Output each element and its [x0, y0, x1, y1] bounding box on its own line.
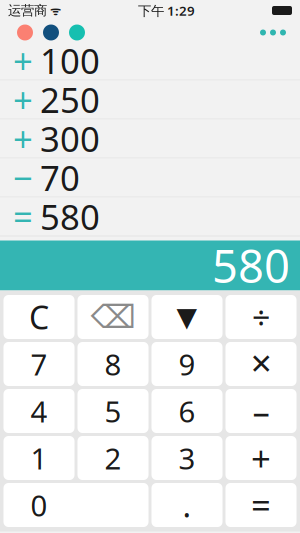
- button[interactable]: +: [0, 41, 300, 80]
- staticText: −: [13, 154, 33, 200]
- staticText: 0: [30, 485, 47, 524]
- staticText: 运营商: [8, 2, 47, 19]
- button[interactable]: 5: [77, 389, 148, 433]
- staticText: 4: [30, 391, 47, 430]
- button[interactable]: =: [225, 483, 296, 527]
- staticText: 2: [104, 438, 121, 477]
- button[interactable]: +: [0, 80, 300, 119]
- staticText: 下午 1:29: [138, 2, 195, 19]
- button[interactable]: Blue tag: [38, 20, 64, 44]
- staticText: 7: [30, 344, 47, 383]
- button[interactable]: C: [3, 295, 74, 339]
- staticText: C: [29, 296, 49, 338]
- staticText: +: [13, 115, 33, 161]
- staticText: 3: [178, 438, 195, 477]
- staticText: 580: [40, 193, 100, 239]
- staticText: =: [251, 482, 271, 528]
- staticText: 70: [40, 154, 80, 200]
- button[interactable]: 4: [3, 389, 74, 433]
- staticText: +: [13, 76, 33, 122]
- staticText: ▼: [176, 302, 197, 332]
- button[interactable]: 7: [3, 342, 74, 386]
- staticText: .: [182, 484, 191, 526]
- staticText: 9: [178, 344, 195, 383]
- staticText: 300: [40, 115, 100, 161]
- button[interactable]: 3: [151, 436, 222, 480]
- staticText: 100: [40, 37, 100, 83]
- button[interactable]: .: [151, 483, 222, 527]
- staticText: 5: [104, 391, 121, 430]
- button[interactable]: −: [0, 158, 300, 197]
- staticText: ⌫: [90, 299, 135, 335]
- button[interactable]: =: [0, 197, 300, 236]
- button[interactable]: +: [225, 436, 296, 480]
- button[interactable]: Hide keyboard: [151, 295, 222, 339]
- button[interactable]: 8: [77, 342, 148, 386]
- button[interactable]: 2: [77, 436, 148, 480]
- button[interactable]: More options: [252, 21, 294, 43]
- button[interactable]: 9: [151, 342, 222, 386]
- button[interactable]: Delete: [77, 295, 148, 339]
- staticText: 1: [30, 438, 47, 477]
- staticText: +: [251, 435, 271, 481]
- button[interactable]: 1: [3, 436, 74, 480]
- staticText: –: [252, 388, 269, 434]
- staticText: 250: [40, 76, 100, 122]
- staticText: 6: [178, 391, 195, 430]
- button[interactable]: Red tag: [12, 20, 38, 44]
- staticText: +: [13, 37, 33, 83]
- button[interactable]: ✕: [225, 342, 296, 386]
- staticText: ✕: [249, 348, 272, 380]
- button[interactable]: Teal tag: [64, 20, 90, 44]
- button[interactable]: ÷: [225, 295, 296, 339]
- button[interactable]: 6: [151, 389, 222, 433]
- staticText: ᯤ: [47, 2, 61, 18]
- staticText: 8: [104, 344, 121, 383]
- staticText: 580: [212, 235, 290, 296]
- button[interactable]: –: [225, 389, 296, 433]
- staticText: =: [13, 193, 33, 239]
- staticText: ÷: [252, 296, 270, 338]
- button[interactable]: +: [0, 119, 300, 158]
- button[interactable]: 0: [3, 483, 148, 527]
